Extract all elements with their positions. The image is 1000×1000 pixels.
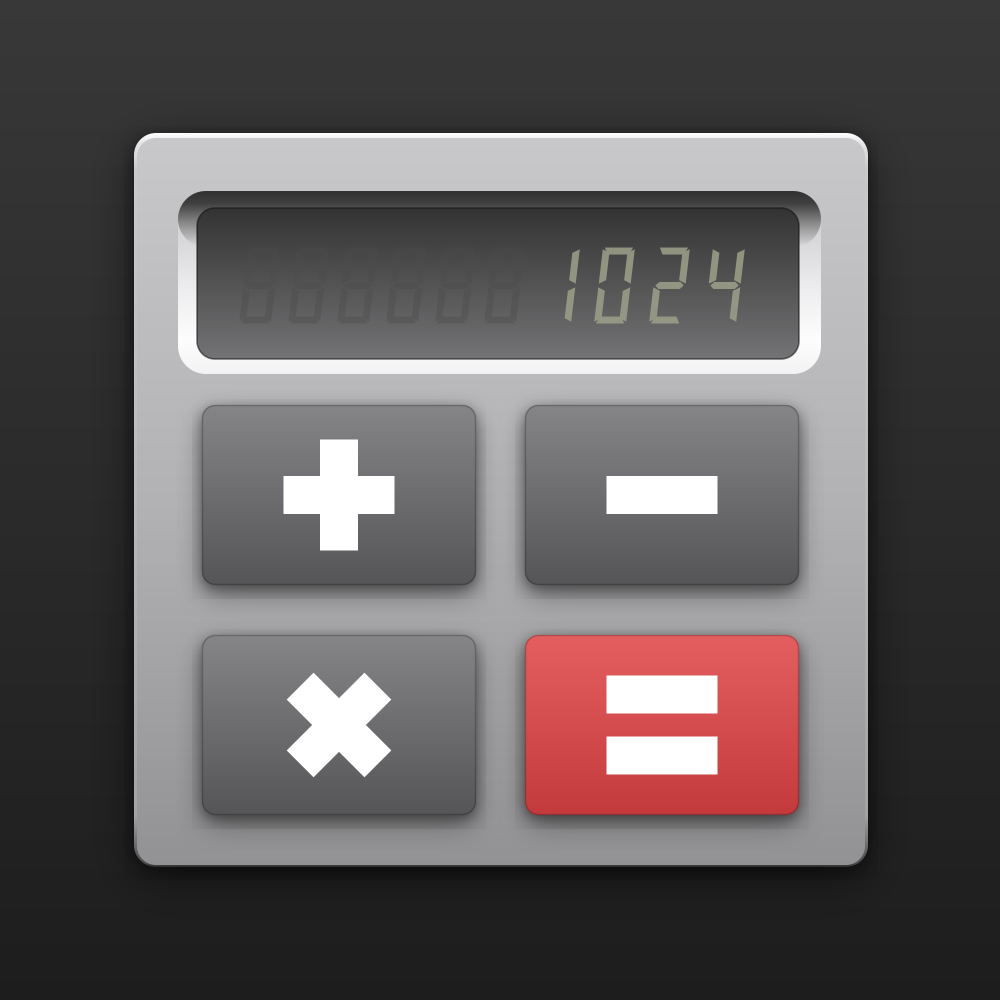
button[interactable]: Plus <box>202 405 476 585</box>
button[interactable]: Equals <box>525 635 799 815</box>
button[interactable]: Minus <box>525 405 799 585</box>
button[interactable]: Multiply <box>202 635 476 815</box>
